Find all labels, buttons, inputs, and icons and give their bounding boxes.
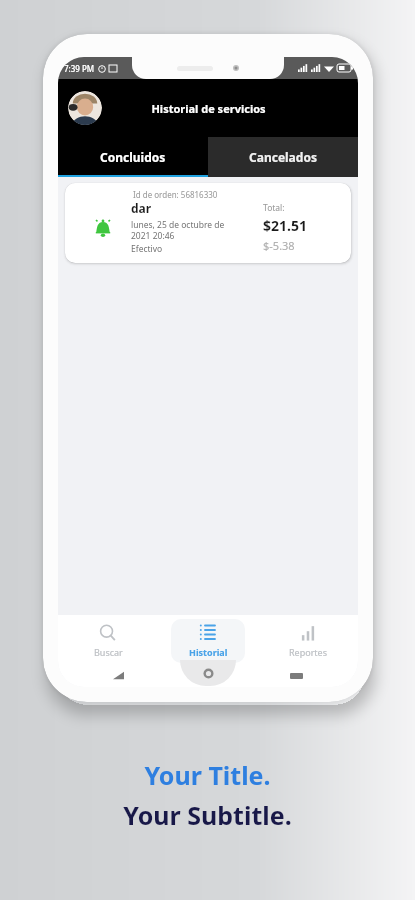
staticText: Your Subtitle. bbox=[123, 798, 292, 832]
button[interactable]: Cancelados bbox=[208, 137, 358, 177]
staticText: Buscar bbox=[94, 646, 123, 658]
staticText: 7:39 PM bbox=[64, 63, 95, 74]
staticText: $21.51 bbox=[263, 216, 307, 235]
staticText: $-5.38 bbox=[263, 238, 295, 253]
button[interactable]: Profile bbox=[68, 91, 102, 125]
staticText: Historial de servicios bbox=[151, 101, 266, 116]
staticText: Your Title. bbox=[144, 758, 271, 792]
staticText: Concluidos bbox=[100, 149, 166, 165]
staticText: lunes, 25 de octubre de 2021 20:46 bbox=[131, 219, 225, 241]
staticText: Cancelados bbox=[249, 149, 317, 165]
staticText: Efectivo bbox=[131, 243, 163, 255]
staticText: Id de orden: 56816330 bbox=[133, 189, 218, 200]
staticText: Historial bbox=[189, 646, 228, 658]
staticText: Total: bbox=[263, 202, 285, 214]
button[interactable]: Concluidos bbox=[58, 137, 208, 177]
button[interactable]: Buscar bbox=[71, 619, 145, 663]
button[interactable]: Historial bbox=[171, 619, 245, 663]
staticText: dar bbox=[131, 200, 152, 216]
staticText: Reportes bbox=[289, 646, 328, 658]
button[interactable]: Id de orden: 56816330 bbox=[65, 183, 351, 263]
button[interactable]: Reportes bbox=[271, 619, 345, 663]
